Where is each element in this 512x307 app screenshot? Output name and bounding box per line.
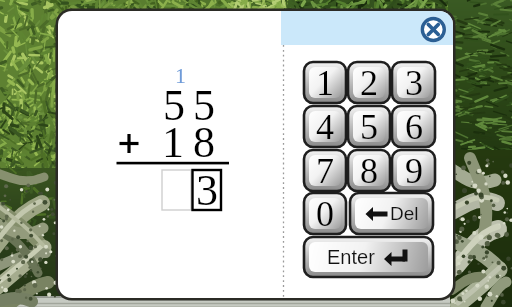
button[interactable]: 9 xyxy=(392,150,435,191)
staticText: 5 xyxy=(163,81,185,130)
button[interactable]: Enter xyxy=(304,237,433,277)
staticText: 4 xyxy=(316,107,334,147)
button[interactable]: 4 xyxy=(304,106,346,147)
staticText: 8 xyxy=(360,151,378,191)
staticText: 1 xyxy=(175,63,186,87)
staticText: 8 xyxy=(193,118,215,167)
button[interactable] xyxy=(192,170,221,210)
button[interactable]: 8 xyxy=(348,150,390,191)
button[interactable] xyxy=(419,15,448,44)
staticText: 3 xyxy=(405,63,423,103)
staticText: Del xyxy=(390,203,419,224)
staticText: 2 xyxy=(360,63,378,103)
staticText: 5 xyxy=(193,81,215,130)
button[interactable]: 5 xyxy=(348,106,390,147)
staticText: 5 xyxy=(360,107,378,147)
button[interactable]: 7 xyxy=(304,150,346,191)
staticText: 9 xyxy=(405,151,423,191)
staticText: Enter xyxy=(327,246,375,268)
button[interactable]: 3 xyxy=(392,62,435,103)
staticText: 0 xyxy=(316,194,334,234)
staticText: 1 xyxy=(162,118,184,167)
button[interactable]: 2 xyxy=(348,62,390,103)
button[interactable]: 0 xyxy=(304,193,346,234)
button[interactable]: Del xyxy=(350,193,433,234)
button[interactable] xyxy=(162,170,191,210)
staticText: 7 xyxy=(316,151,334,191)
button[interactable]: 1 xyxy=(304,62,346,103)
staticText: 3 xyxy=(196,166,218,215)
button[interactable]: 6 xyxy=(392,106,435,147)
staticText: 6 xyxy=(405,107,423,147)
staticText: 1 xyxy=(316,63,334,103)
